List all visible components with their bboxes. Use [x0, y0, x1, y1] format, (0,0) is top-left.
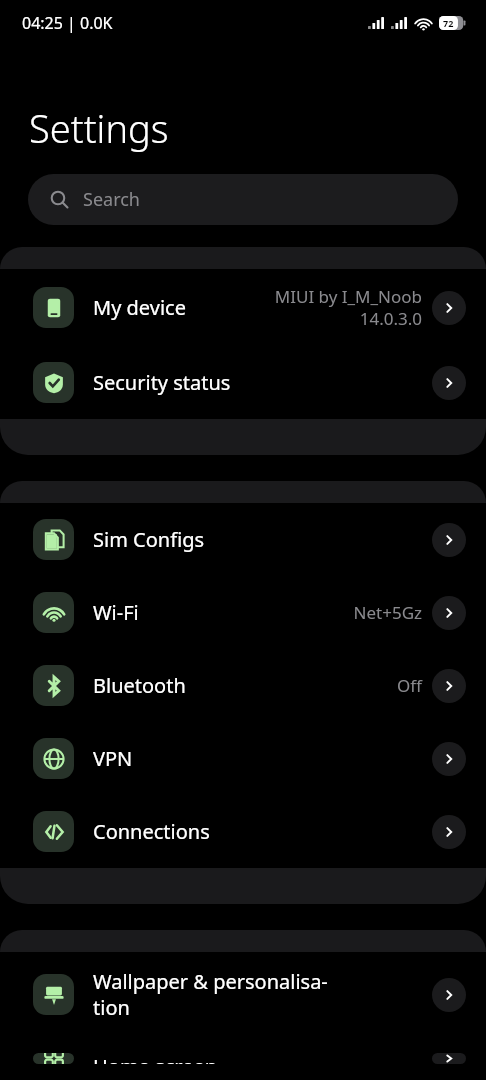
staticText: Connections: [93, 818, 432, 845]
button[interactable]: Wi-Fi: [0, 576, 486, 649]
staticText: Wi-Fi: [93, 599, 353, 626]
staticText: Wallpaper & personalisa- tion: [93, 968, 432, 1021]
staticText: My device: [93, 294, 274, 321]
staticText: Security status: [93, 369, 432, 396]
staticText: Off: [397, 674, 422, 697]
staticText: Search: [83, 187, 140, 212]
button[interactable]: Search: [28, 174, 458, 225]
staticText: Home screen: [93, 1053, 432, 1064]
button[interactable]: My device: [0, 269, 486, 346]
button[interactable]: Bluetooth: [0, 649, 486, 722]
button[interactable]: Security status: [0, 346, 486, 419]
button[interactable]: Connections: [0, 795, 486, 868]
staticText: 72: [443, 17, 454, 29]
staticText: Net+5Gz: [353, 601, 422, 624]
button[interactable]: VPN: [0, 722, 486, 795]
staticText: MIUI by I_M_Noob 14.0.3.0: [274, 285, 422, 330]
staticText: Settings: [29, 102, 169, 154]
button[interactable]: Home screen: [0, 1037, 486, 1080]
staticText: Bluetooth: [93, 672, 397, 699]
staticText: VPN: [93, 745, 432, 772]
button[interactable]: Wallpaper & personalisa- tion: [0, 952, 486, 1037]
staticText: 04:25 | 0.0K: [22, 12, 113, 34]
staticText: Sim Configs: [93, 526, 432, 553]
button[interactable]: Sim Configs: [0, 503, 486, 576]
